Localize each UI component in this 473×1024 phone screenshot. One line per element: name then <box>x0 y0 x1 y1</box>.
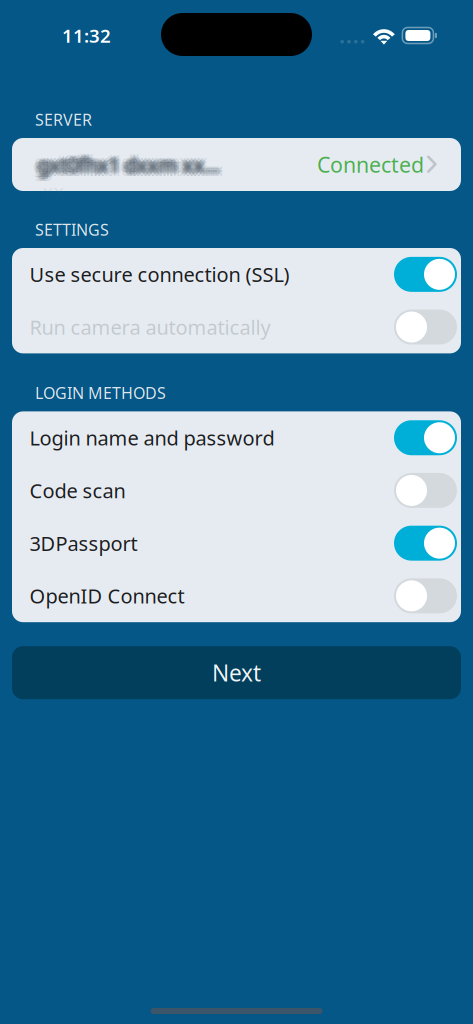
button[interactable]: OpenID Connect <box>12 569 461 622</box>
staticText: gxt0fhx1 dxxm xx… <box>43 151 183 205</box>
staticText: Use secure connection (SSL) <box>29 261 289 288</box>
staticText: Code scan <box>29 477 125 504</box>
staticText: gxt0fhx1 dxxm xx… <box>39 150 222 176</box>
staticText: Next <box>212 658 261 688</box>
staticText: gxt0fhx1 dxxm xx… <box>34 151 217 178</box>
staticText: Login name and password <box>29 424 274 451</box>
staticText: gxt0fhx1 dxxm xx… <box>39 153 222 180</box>
button[interactable]: gxt0fhx1 dxxm xx… <box>12 138 461 191</box>
staticText: gxt0fhx1 dxxm xx… <box>34 155 217 181</box>
staticText: gxt0fhx1 dxxm xx… <box>39 151 222 178</box>
staticText: gxt0fhx1 dxxm xx… <box>41 151 224 178</box>
staticText: gxt0fhx1 dxxm xx… <box>36 153 219 180</box>
staticText: SETTINGS <box>35 219 109 240</box>
staticText: gxt0fhx1 dxxm xx… <box>41 148 224 175</box>
button[interactable]: Use secure connection (SSL) <box>12 248 461 301</box>
staticText: LOGIN METHODS <box>35 382 166 403</box>
staticText: gxt0fhx1 dxxm xx… <box>37 153 220 180</box>
button[interactable]: 3DPassport <box>12 517 461 569</box>
button[interactable]: Login name and password <box>12 411 461 464</box>
staticText: gxt0fhx1 dxxm xx… <box>36 150 219 176</box>
staticText: gxt0fhx1 dxxm xx… <box>41 155 224 181</box>
staticText: gxt0fhx1 dxxm xx… <box>37 148 220 175</box>
staticText: gxt0fhx1 dxxm xx… <box>37 150 220 176</box>
staticText: gxt0fhx1 dxxm xx… <box>37 155 220 181</box>
staticText: OpenID Connect <box>29 583 184 609</box>
button[interactable]: Run camera automatically <box>12 301 461 353</box>
staticText: Connected <box>317 150 424 179</box>
staticText: gxt0fhx1 dxxm xx… <box>32 151 215 178</box>
staticText: 3DPassport <box>29 530 137 556</box>
staticText: gxt0fhx1 dxxm xx… <box>34 148 217 175</box>
staticText: 11:32 <box>62 23 111 48</box>
staticText: Run camera automatically <box>29 314 270 340</box>
staticText: SERVER <box>35 109 92 130</box>
staticText: gxt0fhx1 dxxm xx… <box>36 151 219 178</box>
button[interactable]: Next <box>12 646 461 699</box>
staticText: gxt0fhx1 dxxm xx… <box>37 151 220 178</box>
button[interactable]: Code scan <box>12 464 461 517</box>
